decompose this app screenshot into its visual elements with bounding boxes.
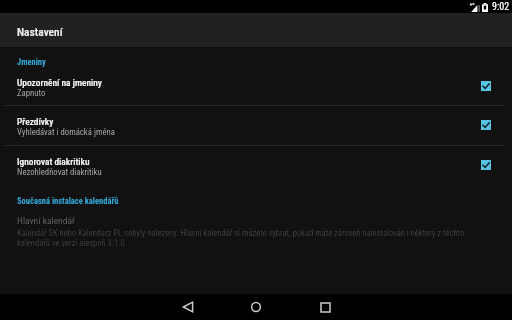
staticText: Nastavení	[17, 25, 63, 38]
button[interactable]: Home	[244, 294, 268, 320]
button[interactable]: Upozornění na jmeniny	[0, 66, 512, 106]
staticText: Upozornění na jmeniny	[17, 77, 102, 88]
button[interactable]: Ignorovat diakritiku	[0, 145, 512, 185]
button[interactable]: Back	[176, 294, 200, 320]
staticText: Současná instalace kalendářů	[17, 196, 119, 206]
staticText: Nezohledňovat diakritiku	[17, 167, 102, 177]
button[interactable]: Recent apps	[313, 294, 337, 320]
staticText: Vyhledávat i domácká jména	[17, 127, 115, 137]
button[interactable]: Hlavní kalendář	[0, 215, 512, 254]
staticText: Hlavní kalendář	[17, 215, 75, 226]
staticText: Zapnuto	[17, 88, 46, 98]
staticText: 9:02	[492, 1, 510, 13]
button[interactable]: Přezdívky	[0, 105, 512, 145]
staticText: Přezdívky	[17, 116, 54, 127]
staticText: Ignorovat diakritiku	[17, 156, 90, 167]
staticText: Kalendář SK nebo Kalendarz PL nebyly nal…	[17, 228, 490, 248]
staticText: Jmeniny	[17, 57, 46, 67]
